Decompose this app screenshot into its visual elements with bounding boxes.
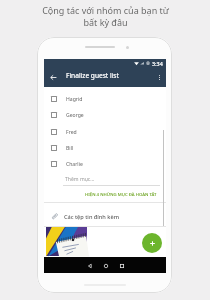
staticText: Bill	[66, 145, 74, 152]
button[interactable]: Charlie	[44, 156, 166, 172]
button[interactable]: Recents	[116, 260, 127, 271]
button[interactable]: More options	[153, 67, 166, 87]
staticText: Hagrid	[66, 96, 83, 103]
staticText: Thêm mục...	[65, 176, 95, 183]
button[interactable]: Home	[100, 260, 111, 271]
staticText: bất kỳ đâu	[83, 16, 128, 28]
button[interactable]: Back	[44, 67, 62, 87]
staticText: 3:34	[152, 60, 163, 67]
button[interactable]: Add	[142, 233, 162, 253]
button[interactable]: Thêm mục...	[44, 173, 166, 185]
button[interactable]: George	[44, 107, 166, 123]
button[interactable]: Bill	[44, 140, 166, 156]
button[interactable]: Fred	[44, 124, 166, 140]
staticText: Các tệp tin đính kèm	[64, 213, 119, 221]
staticText: HIỆN 4 NHỮNG MỤC ĐÃ HOÀN TẤT	[85, 191, 157, 197]
staticText: Fred	[66, 129, 77, 136]
button[interactable]: HIỆN 4 NHỮNG MỤC ĐÃ HOÀN TẤT	[44, 187, 166, 200]
button[interactable]: Back	[84, 260, 95, 271]
button[interactable]: Hagrid	[44, 91, 166, 107]
button[interactable]: Các tệp tin đính kèm	[44, 209, 166, 224]
staticText: Cộng tác với nhóm của bạn từ	[42, 4, 169, 16]
staticText: Charlie	[66, 161, 83, 168]
staticText: Finalize guest list	[66, 71, 119, 80]
staticText: George	[66, 112, 84, 119]
